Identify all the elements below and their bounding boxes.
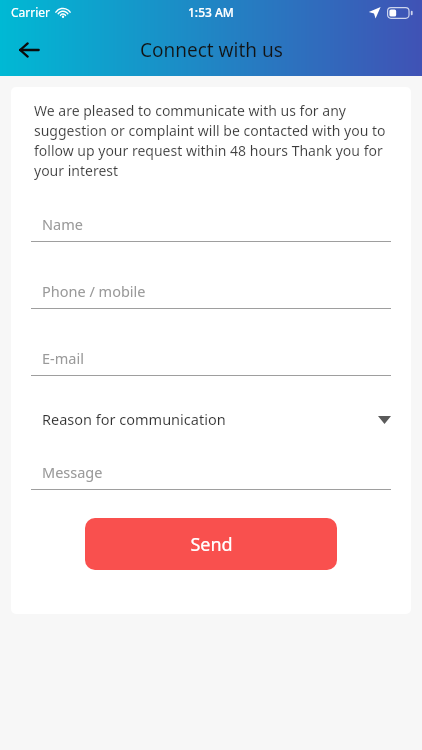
staticText: Send — [190, 532, 233, 557]
staticText: Connect with us — [140, 37, 283, 63]
staticText: Phone / mobile — [42, 281, 146, 301]
staticText: Name — [42, 214, 83, 234]
staticText: Reason for communication — [42, 409, 378, 429]
staticText: We are pleased to communicate with us fo… — [34, 101, 393, 180]
staticText: E-mail — [42, 348, 84, 368]
staticText: Carrier — [11, 4, 51, 20]
staticText: Message — [42, 462, 103, 482]
button[interactable]: Message — [31, 462, 391, 490]
staticText: 1:53 AM — [188, 4, 234, 20]
button[interactable]: Send — [85, 518, 337, 570]
button[interactable]: Phone / mobile — [31, 281, 391, 309]
button[interactable]: Reason for communication — [31, 409, 391, 429]
button[interactable]: Back — [10, 31, 48, 69]
button[interactable]: Name — [31, 214, 391, 242]
button[interactable]: E-mail — [31, 348, 391, 376]
